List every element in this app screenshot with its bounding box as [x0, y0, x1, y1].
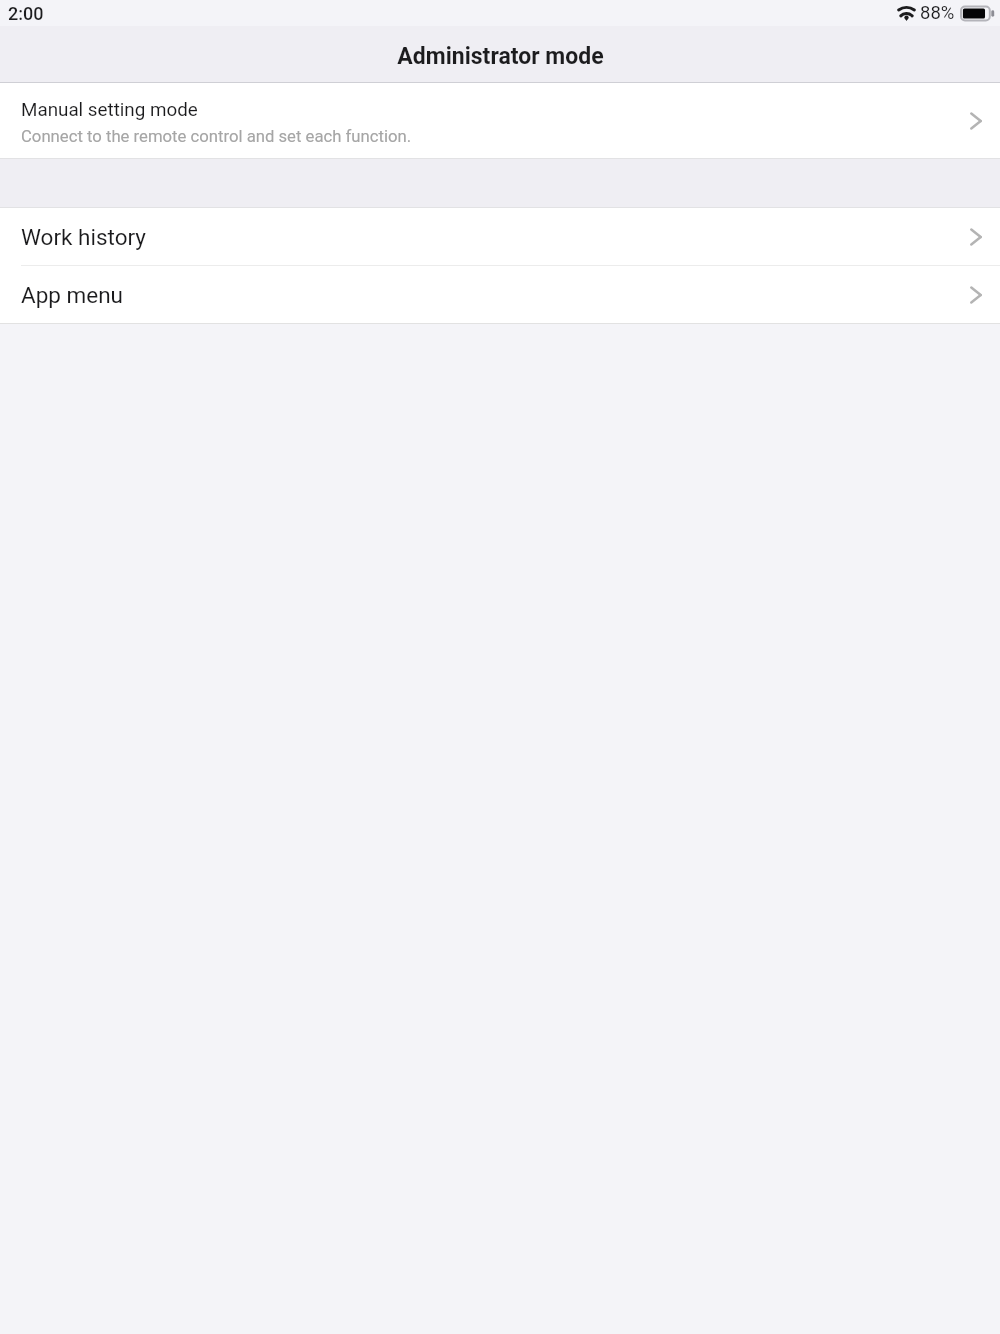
button[interactable]: Work history [0, 208, 1000, 265]
staticText: Administrator mode [397, 43, 604, 70]
staticText: Connect to the remote control and set ea… [21, 127, 412, 147]
staticText: Work history [21, 224, 970, 250]
staticText: App menu [21, 282, 970, 308]
staticText: 88% [920, 2, 955, 24]
staticText: Manual setting mode [21, 99, 198, 121]
button[interactable]: App menu [0, 266, 1000, 323]
button[interactable]: Manual setting mode [0, 83, 1000, 158]
staticText: 2:00 [8, 3, 44, 24]
